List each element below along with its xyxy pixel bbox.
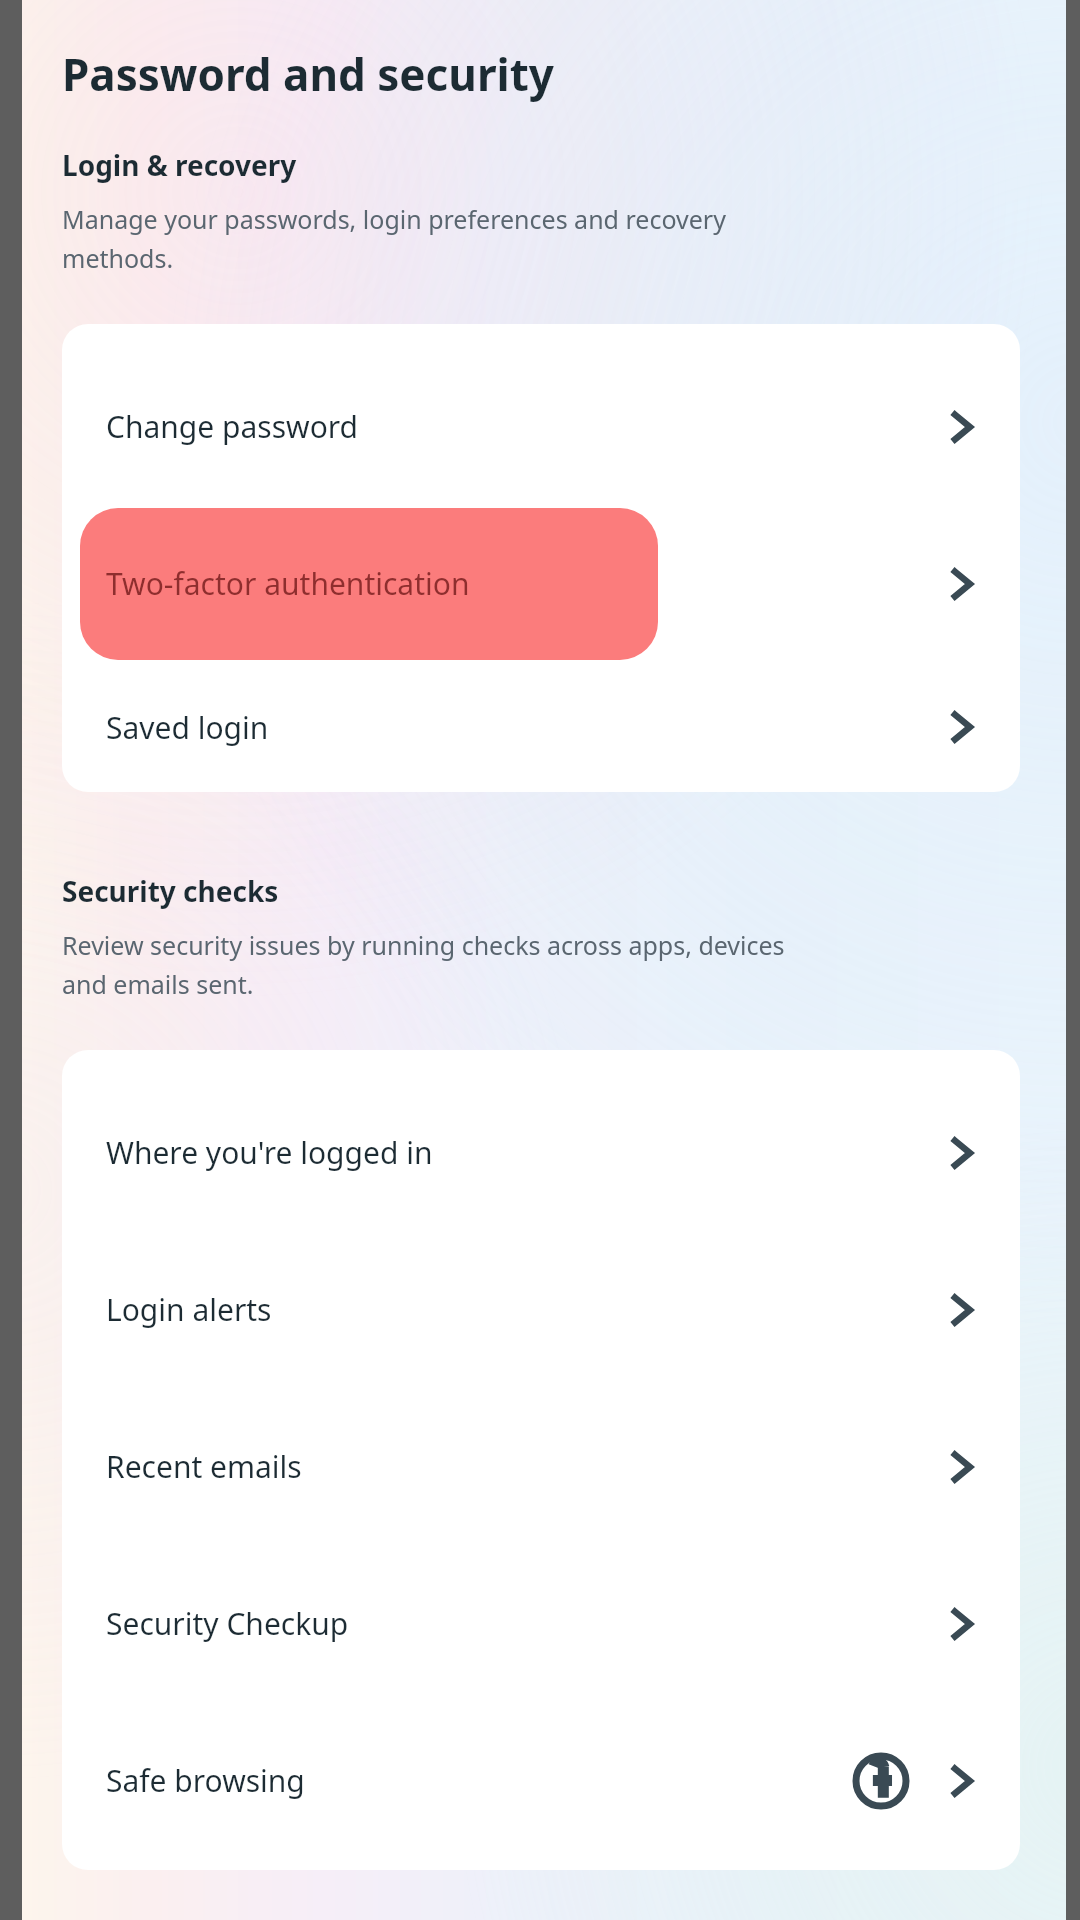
button[interactable]: Where you're logged in bbox=[62, 1050, 1020, 1231]
other: Facebook bbox=[852, 1752, 910, 1810]
other: Open Where you're logged in bbox=[940, 1131, 984, 1175]
staticText: Review security issues by running checks… bbox=[62, 928, 785, 1002]
staticText: Two-factor authentication bbox=[106, 563, 940, 604]
button[interactable]: Recent emails bbox=[62, 1388, 1020, 1545]
other: Open Change password bbox=[940, 405, 984, 449]
button[interactable]: Login alerts bbox=[62, 1231, 1020, 1388]
staticText: Where you're logged in bbox=[106, 1132, 940, 1173]
button[interactable]: Change password bbox=[62, 324, 1020, 505]
staticText: Change password bbox=[106, 406, 940, 447]
staticText: Security Checkup bbox=[106, 1603, 940, 1644]
other: Open Safe browsing bbox=[940, 1759, 984, 1803]
staticText: Manage your passwords, login preferences… bbox=[62, 202, 726, 276]
staticText: Saved login bbox=[106, 707, 940, 748]
staticText: Password and security bbox=[62, 44, 554, 104]
button[interactable]: Safe browsing bbox=[62, 1702, 1020, 1859]
other: Open Two-factor authentication bbox=[940, 562, 984, 606]
staticText: Login alerts bbox=[106, 1289, 940, 1330]
staticText: Security checks bbox=[62, 872, 279, 910]
other: Open Login alerts bbox=[940, 1288, 984, 1332]
other: Open Recent emails bbox=[940, 1445, 984, 1489]
other: Open Security Checkup bbox=[940, 1602, 984, 1646]
staticText: Recent emails bbox=[106, 1446, 940, 1487]
button[interactable]: Saved login bbox=[62, 662, 1020, 792]
button[interactable]: Security Checkup bbox=[62, 1545, 1020, 1702]
other: Open Saved login bbox=[940, 705, 984, 749]
button[interactable]: Two-factor authentication bbox=[62, 505, 1020, 662]
staticText: Login & recovery bbox=[62, 146, 297, 184]
staticText: Safe browsing bbox=[106, 1760, 852, 1801]
